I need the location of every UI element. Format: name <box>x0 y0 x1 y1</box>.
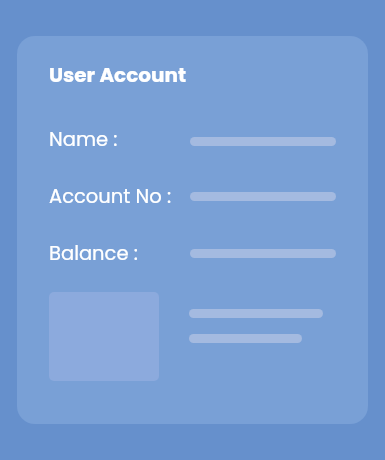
staticText: Account No : <box>49 183 172 210</box>
button[interactable]: User Account <box>17 36 368 424</box>
staticText: Balance : <box>49 240 138 267</box>
staticText: Name : <box>49 126 118 153</box>
staticText: User Account <box>49 61 187 89</box>
